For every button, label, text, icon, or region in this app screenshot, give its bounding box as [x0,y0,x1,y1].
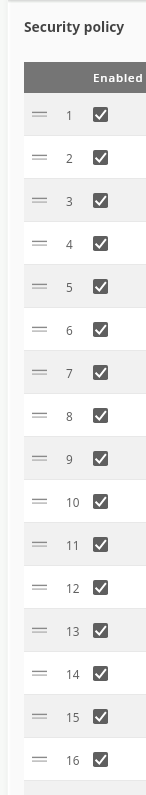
button[interactable]: Reorder row 15 [24,695,146,738]
button[interactable]: Enabled checkbox row 7 [93,365,108,380]
button[interactable]: Enabled checkbox row 14 [93,666,108,681]
button[interactable]: Enabled checkbox row 6 [93,322,108,337]
button[interactable]: Reorder row 13 [24,609,146,652]
other: Reorder row 12 [32,583,47,593]
other: Reorder row 11 [32,540,47,550]
other: Reorder row 8 [32,411,47,421]
other: Reorder row 14 [32,669,47,679]
staticText: 13 [66,623,80,639]
staticText: 4 [66,236,73,252]
button[interactable]: Reorder row 14 [24,652,146,695]
button[interactable]: Enabled checkbox row 1 [93,107,108,122]
button[interactable]: Reorder row 7 [24,351,146,394]
staticText: 2 [66,150,73,166]
staticText: 8 [66,408,73,424]
other: Reorder row 3 [32,196,47,206]
button[interactable]: Enabled checkbox row 13 [93,623,108,638]
staticText: 3 [66,193,73,209]
staticText: 12 [66,580,80,596]
button[interactable]: Reorder row 1 [24,93,146,136]
button[interactable]: Enabled checkbox row 5 [93,279,108,294]
other: Reorder row 16 [32,755,47,765]
staticText: 5 [66,279,73,295]
staticText: 1 [66,107,73,123]
button[interactable]: Reorder row 4 [24,222,146,265]
button[interactable]: Reorder row 5 [24,265,146,308]
other: Reorder row 5 [32,282,47,292]
button[interactable]: Reorder row 6 [24,308,146,351]
staticText: 11 [66,537,80,553]
button[interactable]: Enabled checkbox row 10 [93,494,108,509]
button[interactable]: Enabled checkbox row 11 [93,537,108,552]
button[interactable]: Reorder row 9 [24,437,146,480]
staticText: 9 [66,451,73,467]
other: Reorder row 10 [32,497,47,507]
button[interactable]: Enabled checkbox row 3 [93,193,108,208]
button[interactable]: Enabled checkbox row 15 [93,709,108,724]
button[interactable]: Enabled checkbox row 16 [93,752,108,767]
button[interactable]: Enabled checkbox row 9 [93,451,108,466]
other: Reorder row 4 [32,239,47,249]
other: Reorder row 15 [32,712,47,722]
button[interactable]: Reorder row 2 [24,136,146,179]
button[interactable]: Enabled checkbox row 8 [93,408,108,423]
staticText: 10 [66,494,80,510]
other: Reorder row 7 [32,368,47,378]
button[interactable]: Enabled checkbox row 12 [93,580,108,595]
button[interactable]: Enabled checkbox row 2 [93,150,108,165]
staticText: 14 [66,666,80,682]
other: Reorder row 6 [32,325,47,335]
other: Reorder row 2 [32,153,47,163]
button[interactable]: Reorder row 11 [24,523,146,566]
button[interactable]: Reorder row 16 [24,738,146,781]
staticText: Enabled [93,70,144,86]
staticText: 6 [66,322,73,338]
button[interactable]: Reorder row 3 [24,179,146,222]
button[interactable]: Reorder row 10 [24,480,146,523]
staticText: 16 [66,752,80,768]
staticText: 15 [66,709,80,725]
other: Reorder row 1 [32,110,47,120]
staticText: 7 [66,365,73,381]
other: Reorder row 9 [32,454,47,464]
other: Reorder row 13 [32,626,47,636]
button[interactable]: Reorder row 12 [24,566,146,609]
staticText: Security policy [24,17,125,36]
button[interactable]: Enabled checkbox row 4 [93,236,108,251]
button[interactable]: Reorder row 8 [24,394,146,437]
